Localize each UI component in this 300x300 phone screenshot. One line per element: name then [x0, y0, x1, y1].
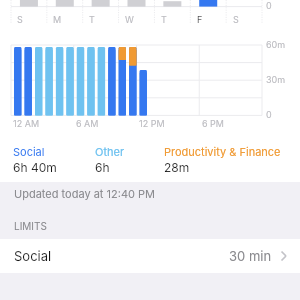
staticText: Other	[95, 145, 125, 158]
staticText: S	[233, 14, 239, 25]
staticText: Social	[13, 145, 45, 158]
staticText: 30 min	[229, 248, 272, 264]
staticText: 0	[266, 0, 272, 11]
staticText: 6 PM	[202, 118, 224, 129]
staticText: 6h 40m	[13, 160, 57, 175]
staticText: 12 AM	[13, 118, 40, 129]
staticText: T	[89, 14, 95, 25]
staticText: Updated today at 12:40 PM	[14, 187, 156, 200]
staticText: 30m	[266, 74, 286, 85]
staticText: Social	[14, 248, 52, 264]
staticText: 12 PM	[139, 118, 165, 129]
staticText: 60m	[266, 39, 286, 50]
staticText: T	[161, 14, 167, 25]
staticText: 6 AM	[76, 118, 99, 129]
staticText: 6h	[95, 160, 110, 175]
button[interactable]: Social	[0, 239, 300, 273]
staticText: 0	[266, 109, 272, 120]
staticText: Productivity & Finance	[164, 145, 281, 158]
staticText: 28m	[164, 160, 190, 175]
staticText: LIMITS	[14, 220, 47, 232]
staticText: M	[53, 14, 62, 25]
staticText: F	[197, 14, 203, 25]
staticText: S	[17, 14, 23, 25]
staticText: W	[125, 14, 134, 25]
